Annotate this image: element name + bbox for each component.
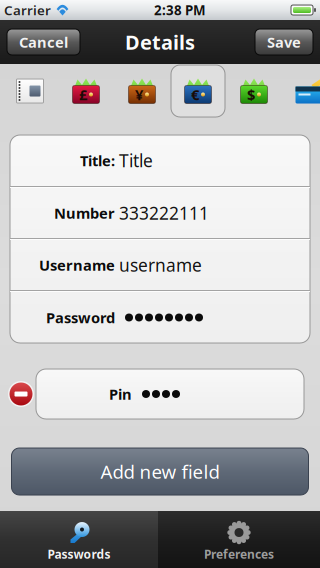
staticText: $	[247, 85, 255, 104]
staticText: 333222111	[119, 201, 209, 224]
staticText: Cancel	[19, 32, 68, 52]
button[interactable]: Delete Pin field	[6, 379, 36, 409]
staticText: Save	[267, 32, 301, 52]
staticText: Pin	[109, 384, 132, 404]
staticText: 2:38 PM	[154, 1, 206, 19]
staticText: Password	[46, 308, 115, 327]
staticText: Carrier	[4, 1, 51, 19]
staticText: Preferences	[204, 546, 274, 562]
button[interactable]: Credit card icon	[283, 65, 320, 117]
button[interactable]: Red wallet icon	[59, 65, 113, 117]
staticText: €	[191, 85, 199, 104]
staticText: Title	[119, 149, 153, 172]
button[interactable]: Passwords	[0, 511, 158, 568]
staticText: Title:	[80, 151, 115, 170]
button[interactable]: Brown wallet icon	[115, 65, 169, 117]
button[interactable]: Preferences	[158, 511, 320, 568]
staticText: Number	[54, 203, 115, 223]
staticText: username	[119, 253, 202, 276]
button[interactable]: Add new field	[11, 448, 308, 495]
button[interactable]: Green wallet icon	[227, 65, 281, 117]
staticText: Username	[39, 255, 115, 275]
button[interactable]: Blue wallet icon, selected	[171, 65, 225, 117]
staticText: Details	[125, 29, 195, 55]
staticText: £	[79, 85, 87, 104]
button[interactable]: Cancel	[7, 29, 80, 55]
staticText: ¥	[135, 85, 143, 104]
button[interactable]: Save	[255, 29, 313, 55]
staticText: Add new field	[100, 459, 219, 484]
staticText: Passwords	[47, 546, 110, 562]
button[interactable]: Note icon	[3, 65, 57, 117]
